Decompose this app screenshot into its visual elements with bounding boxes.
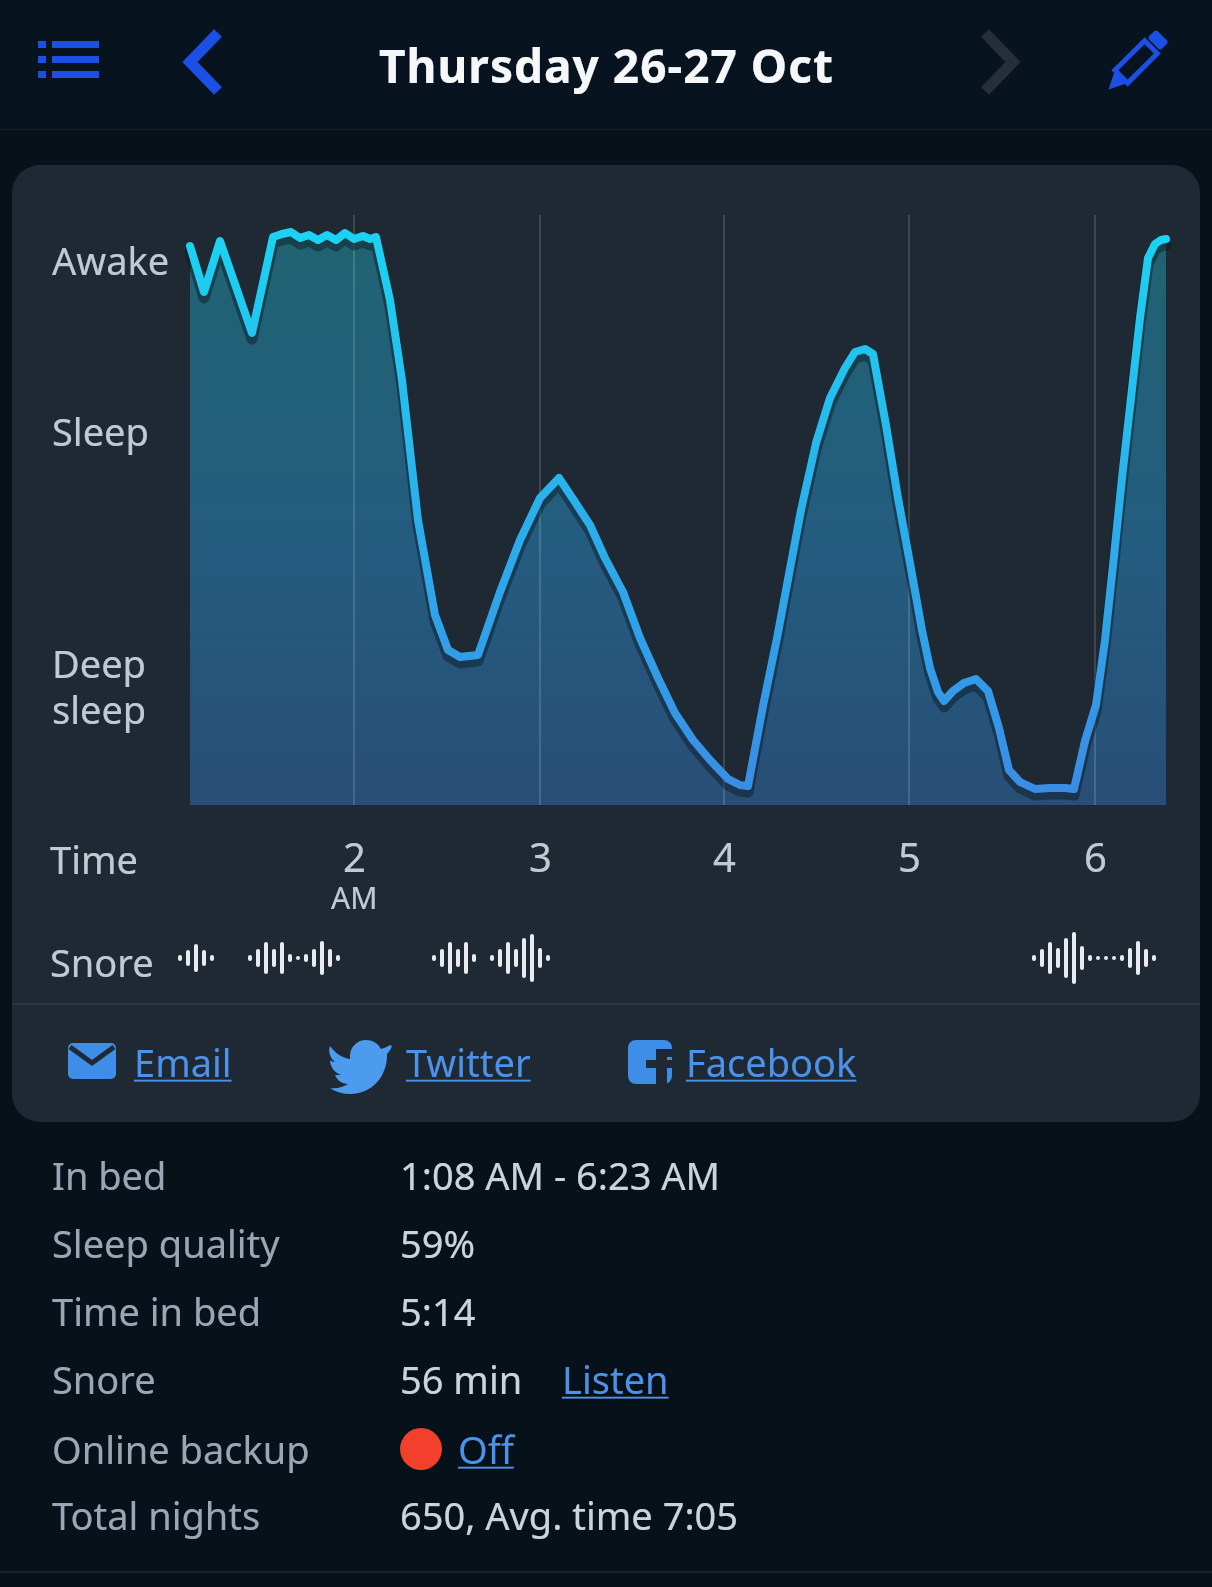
staticText: Twitter xyxy=(406,1036,531,1088)
staticText: Time in bed xyxy=(52,1285,262,1337)
staticText: Thursday 26-27 Oct xyxy=(379,34,834,97)
staticText: 4 xyxy=(713,829,736,883)
staticText: Snore xyxy=(50,936,154,988)
button[interactable]: Email xyxy=(68,1035,232,1089)
button[interactable]: Facebook xyxy=(628,1035,857,1089)
staticText: 1:08 AM - 6:23 AM xyxy=(400,1149,721,1201)
staticText: 650, Avg. time 7:05 xyxy=(400,1489,739,1541)
staticText: AM xyxy=(331,877,378,918)
button[interactable] xyxy=(168,20,248,104)
staticText: 5:14 xyxy=(400,1285,476,1337)
staticText: Awake xyxy=(52,234,170,286)
staticText: Total nights xyxy=(52,1489,261,1541)
staticText: 59% xyxy=(400,1217,476,1269)
staticText: 6 xyxy=(1084,829,1107,883)
button[interactable] xyxy=(28,29,110,89)
button[interactable]: Twitter xyxy=(330,1035,531,1089)
staticText: In bed xyxy=(52,1149,167,1201)
staticText: 2 xyxy=(343,829,366,883)
button[interactable]: Off xyxy=(400,1423,514,1475)
button[interactable] xyxy=(962,20,1042,104)
staticText: Sleep xyxy=(52,405,149,457)
staticText: Email xyxy=(134,1036,232,1088)
staticText: Online backup xyxy=(52,1423,310,1475)
staticText: Time xyxy=(50,833,138,885)
staticText: Sleep quality xyxy=(52,1217,280,1269)
staticText: 3 xyxy=(529,829,552,883)
staticText: Off xyxy=(458,1423,514,1475)
staticText: 5 xyxy=(898,829,921,883)
staticText: 56 min xyxy=(400,1353,523,1405)
staticText: Facebook xyxy=(686,1036,857,1088)
button[interactable]: Listen xyxy=(562,1353,669,1405)
staticText: Snore xyxy=(52,1353,156,1405)
button[interactable] xyxy=(1096,20,1176,104)
staticText: Deep sleep xyxy=(52,637,147,735)
